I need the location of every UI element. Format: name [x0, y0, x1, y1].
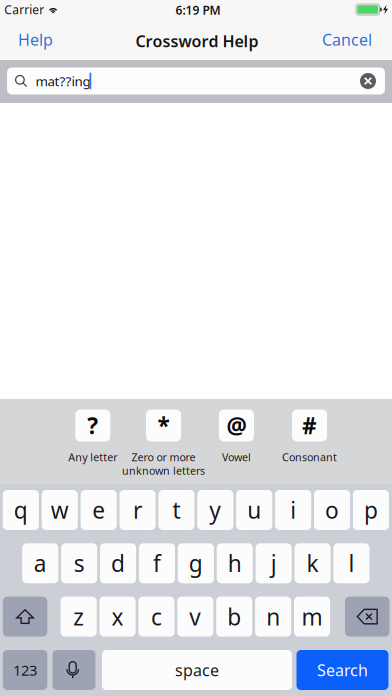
- button[interactable]: v: [177, 597, 213, 637]
- button[interactable]: Help: [12, 23, 59, 56]
- staticText: y: [209, 495, 221, 525]
- staticText: b: [227, 601, 241, 632]
- staticText: f: [153, 548, 161, 578]
- staticText: Zero or more: [131, 450, 195, 464]
- staticText: k: [307, 548, 319, 578]
- staticText: c: [151, 601, 162, 632]
- staticText: e: [92, 495, 105, 525]
- staticText: q: [14, 495, 28, 525]
- button[interactable]: Delete: [345, 597, 389, 637]
- button[interactable]: c: [138, 597, 174, 637]
- button[interactable]: f: [139, 543, 175, 583]
- staticText: space: [175, 659, 219, 681]
- staticText: i: [290, 495, 296, 525]
- button[interactable]: Cancel: [316, 23, 378, 56]
- button[interactable]: l: [333, 543, 369, 583]
- staticText: w: [51, 495, 69, 525]
- staticText: o: [325, 495, 339, 525]
- button[interactable]: space: [102, 650, 292, 690]
- staticText: *: [157, 410, 169, 440]
- button[interactable]: 123: [3, 650, 47, 690]
- staticText: z: [73, 601, 84, 632]
- staticText: a: [34, 548, 47, 578]
- button[interactable]: d: [100, 543, 136, 583]
- staticText: Search: [317, 659, 368, 681]
- staticText: @: [226, 410, 246, 440]
- staticText: l: [348, 548, 354, 578]
- staticText: Help: [18, 29, 53, 50]
- staticText: r: [133, 495, 142, 525]
- button[interactable]: Dictation: [52, 650, 95, 690]
- staticText: #: [302, 410, 317, 440]
- button[interactable]: z: [61, 597, 97, 637]
- button[interactable]: e: [81, 490, 117, 530]
- button[interactable]: w: [42, 490, 78, 530]
- button[interactable]: q: [3, 490, 39, 530]
- button[interactable]: ?: [61, 409, 125, 487]
- staticText: t: [172, 495, 180, 525]
- button[interactable]: p: [353, 490, 389, 530]
- button[interactable]: *: [108, 409, 218, 487]
- staticText: v: [189, 601, 201, 632]
- staticText: h: [228, 548, 242, 578]
- button[interactable]: n: [255, 597, 291, 637]
- button[interactable]: a: [22, 543, 58, 583]
- button[interactable]: x: [99, 597, 136, 637]
- staticText: Consonant: [282, 450, 337, 464]
- button[interactable]: i: [275, 490, 311, 530]
- staticText: 123: [13, 660, 37, 680]
- staticText: m: [302, 601, 323, 632]
- staticText: p: [364, 495, 378, 525]
- staticText: Crossword Help: [135, 30, 258, 52]
- button[interactable]: o: [314, 490, 350, 530]
- staticText: 6:19 PM: [175, 2, 220, 18]
- button[interactable]: @: [206, 409, 266, 487]
- staticText: j: [271, 548, 277, 578]
- button[interactable]: k: [294, 543, 331, 583]
- staticText: n: [266, 601, 280, 632]
- staticText: Carrier: [4, 2, 44, 18]
- button[interactable]: r: [119, 490, 156, 530]
- staticText: x: [111, 601, 123, 632]
- button[interactable]: b: [216, 597, 252, 637]
- button[interactable]: mat??ing: [7, 67, 385, 94]
- button[interactable]: m: [294, 597, 330, 637]
- button[interactable]: Shift: [3, 597, 47, 637]
- staticText: g: [189, 548, 203, 578]
- button[interactable]: j: [256, 543, 292, 583]
- staticText: Vowel: [222, 450, 251, 464]
- button[interactable]: #: [276, 409, 342, 487]
- button[interactable]: u: [236, 490, 272, 530]
- button[interactable]: h: [217, 543, 253, 583]
- staticText: s: [74, 548, 85, 578]
- button[interactable]: y: [197, 490, 233, 530]
- staticText: d: [111, 548, 125, 578]
- staticText: mat??ing: [35, 72, 90, 90]
- staticText: Any letter: [68, 450, 117, 464]
- staticText: Cancel: [322, 29, 372, 50]
- staticText: u: [247, 495, 261, 525]
- button[interactable]: t: [158, 490, 194, 530]
- button[interactable]: Search: [296, 650, 388, 690]
- staticText: unknown letters: [122, 463, 205, 478]
- staticText: ?: [87, 410, 98, 440]
- button[interactable]: s: [61, 543, 97, 583]
- button[interactable]: g: [178, 543, 214, 583]
